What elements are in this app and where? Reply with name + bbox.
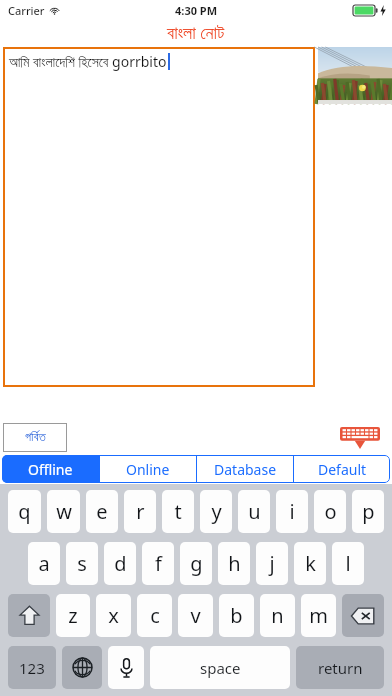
button[interactable]: Default bbox=[294, 455, 390, 483]
staticText: 4:30 PM bbox=[175, 3, 218, 18]
button[interactable]: r bbox=[124, 490, 156, 533]
button[interactable]: b bbox=[219, 594, 254, 637]
button[interactable]: j bbox=[256, 542, 288, 585]
staticText: e bbox=[96, 498, 108, 525]
button[interactable]: e bbox=[86, 490, 118, 533]
staticText: n bbox=[271, 602, 284, 629]
staticText: y bbox=[211, 498, 222, 525]
staticText: w bbox=[56, 498, 72, 525]
staticText: 123 bbox=[19, 658, 45, 678]
button[interactable]: m bbox=[301, 594, 336, 637]
staticText: a bbox=[38, 550, 50, 577]
button[interactable]: Database bbox=[197, 455, 293, 483]
button[interactable]: Change language bbox=[62, 646, 102, 689]
button[interactable]: a bbox=[28, 542, 60, 585]
button[interactable]: w bbox=[47, 490, 80, 533]
button[interactable]: x bbox=[96, 594, 131, 637]
staticText: f bbox=[155, 550, 162, 577]
button[interactable]: d bbox=[104, 542, 136, 585]
staticText: return bbox=[318, 658, 363, 678]
staticText: m bbox=[309, 602, 328, 629]
staticText: বাংলা নোট bbox=[167, 20, 225, 45]
staticText: x bbox=[108, 602, 119, 629]
button[interactable]: গর্বিত bbox=[3, 423, 67, 452]
button[interactable]: Backspace bbox=[342, 594, 384, 637]
staticText: v bbox=[190, 602, 201, 629]
staticText: space bbox=[200, 658, 241, 678]
button[interactable]: return bbox=[296, 646, 384, 689]
staticText: o bbox=[324, 498, 337, 525]
button[interactable]: v bbox=[178, 594, 213, 637]
button[interactable]: আমি বাংলাদেশি হিসেবে gorrbito bbox=[3, 47, 315, 387]
button[interactable]: f bbox=[142, 542, 174, 585]
button[interactable]: Photo bbox=[318, 47, 392, 104]
staticText: j bbox=[269, 550, 275, 577]
staticText: l bbox=[345, 550, 351, 577]
button[interactable]: Online bbox=[100, 455, 196, 483]
button[interactable]: space bbox=[150, 646, 290, 689]
button[interactable]: c bbox=[137, 594, 172, 637]
staticText: t bbox=[174, 498, 182, 525]
button[interactable]: s bbox=[66, 542, 98, 585]
staticText: k bbox=[305, 550, 316, 577]
staticText: Online bbox=[126, 460, 170, 479]
staticText: Database bbox=[214, 460, 277, 479]
staticText: h bbox=[228, 550, 241, 577]
button[interactable]: Offline bbox=[2, 455, 99, 483]
staticText: p bbox=[362, 498, 375, 525]
staticText: আমি বাংলাদেশি হিসেবে gorrbito bbox=[9, 52, 167, 71]
button[interactable]: h bbox=[218, 542, 250, 585]
button[interactable]: o bbox=[314, 490, 346, 533]
staticText: r bbox=[136, 498, 145, 525]
staticText: c bbox=[150, 602, 160, 629]
staticText: u bbox=[248, 498, 261, 525]
staticText: Offline bbox=[28, 460, 73, 479]
staticText: q bbox=[18, 498, 31, 525]
button[interactable]: q bbox=[8, 490, 41, 533]
button[interactable]: k bbox=[294, 542, 326, 585]
staticText: d bbox=[114, 550, 127, 577]
button[interactable]: p bbox=[352, 490, 384, 533]
staticText: g bbox=[190, 550, 203, 577]
staticText: Default bbox=[318, 460, 367, 479]
staticText: b bbox=[230, 602, 243, 629]
staticText: s bbox=[77, 550, 87, 577]
button[interactable]: n bbox=[260, 594, 295, 637]
button[interactable]: y bbox=[200, 490, 232, 533]
staticText: z bbox=[68, 602, 78, 629]
staticText: Carrier bbox=[8, 3, 45, 18]
button[interactable]: Hide keyboard bbox=[340, 427, 380, 449]
button[interactable]: 123 bbox=[8, 646, 56, 689]
button[interactable]: g bbox=[180, 542, 212, 585]
button[interactable]: t bbox=[162, 490, 194, 533]
button[interactable]: l bbox=[332, 542, 364, 585]
button[interactable]: Dictation bbox=[108, 646, 144, 689]
staticText: গর্বিত bbox=[25, 431, 46, 444]
button[interactable]: Shift bbox=[8, 594, 50, 637]
staticText: i bbox=[289, 498, 295, 525]
button[interactable]: u bbox=[238, 490, 270, 533]
button[interactable]: z bbox=[56, 594, 90, 637]
button[interactable]: i bbox=[276, 490, 308, 533]
